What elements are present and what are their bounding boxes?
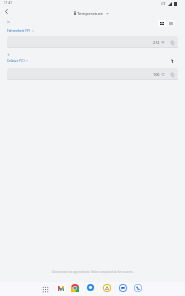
button[interactable]: 212 [7, 36, 178, 48]
staticText: Celsius (°C) [7, 58, 25, 63]
staticText: LTE [161, 2, 166, 6]
staticText: °F [161, 40, 165, 45]
button[interactable]: Fahrenheit (°F) [7, 28, 34, 33]
button[interactable]: Chrome [71, 284, 79, 292]
button[interactable]: Gmail [56, 284, 65, 293]
staticText: °C [161, 72, 165, 77]
button[interactable]: 100 [7, 68, 178, 80]
button[interactable]: Copy [170, 72, 175, 77]
button[interactable]: All apps [42, 286, 49, 293]
staticText: Conversions are approximate. Values comp… [20, 270, 165, 274]
button[interactable]: Back [2, 7, 11, 16]
button[interactable]: Phone [134, 284, 142, 292]
staticText: in [7, 20, 10, 24]
button[interactable]: Drive [103, 284, 111, 292]
button[interactable]: Temperature [74, 10, 109, 16]
staticText: 212 [153, 40, 160, 45]
button[interactable]: Photos [87, 284, 94, 291]
button[interactable]: Keypad [158, 20, 166, 27]
button[interactable]: List [167, 20, 175, 27]
staticText: 11:41 [4, 1, 13, 5]
staticText: Temperature [77, 10, 104, 16]
staticText: Fahrenheit (°F) [7, 28, 31, 33]
button[interactable]: Celsius (°C) [7, 58, 28, 63]
button[interactable]: Copy [170, 40, 175, 45]
staticText: 100 [153, 72, 160, 77]
button[interactable]: Messages [119, 284, 127, 292]
